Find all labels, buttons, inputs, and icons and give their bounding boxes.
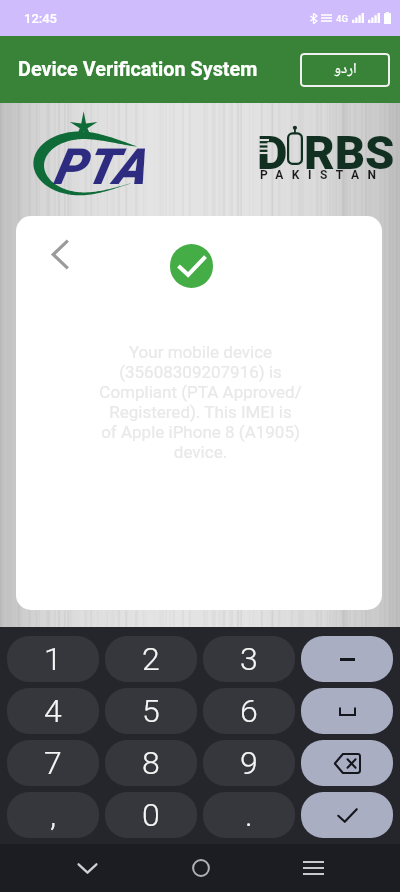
staticText: اردو bbox=[334, 57, 357, 83]
button[interactable]: Recent apps bbox=[257, 844, 370, 892]
button[interactable]: 0 bbox=[105, 792, 197, 838]
staticText: 3 bbox=[240, 640, 258, 678]
button[interactable]: 7 bbox=[7, 740, 99, 786]
button[interactable]: Home bbox=[144, 844, 257, 892]
button[interactable]: 3 bbox=[203, 636, 295, 682]
staticText: , bbox=[50, 796, 57, 834]
button[interactable]: Enter bbox=[301, 792, 393, 838]
staticText: 0 bbox=[142, 796, 160, 834]
button[interactable]: Back bbox=[37, 231, 83, 277]
button[interactable]: Backspace bbox=[301, 740, 393, 786]
staticText: 4 bbox=[44, 692, 62, 730]
button[interactable]: 8 bbox=[105, 740, 197, 786]
button[interactable]: 6 bbox=[203, 688, 295, 734]
staticText: 1 bbox=[44, 640, 62, 678]
staticText: Device Verification System bbox=[18, 58, 258, 81]
staticText: 5 bbox=[142, 692, 160, 730]
button[interactable]: Dash bbox=[301, 636, 393, 682]
staticText: 12:45 bbox=[24, 11, 58, 26]
button[interactable]: . bbox=[203, 792, 295, 838]
button[interactable]: 9 bbox=[203, 740, 295, 786]
button[interactable]: Space bbox=[301, 688, 393, 734]
staticText: . bbox=[245, 796, 253, 834]
button[interactable]: 1 bbox=[7, 636, 99, 682]
button[interactable]: 4 bbox=[7, 688, 99, 734]
button[interactable]: , bbox=[7, 792, 99, 838]
button[interactable]: 2 bbox=[105, 636, 197, 682]
staticText: 6 bbox=[240, 692, 258, 730]
button[interactable]: اردو bbox=[300, 53, 390, 87]
staticText: D bbox=[257, 125, 288, 180]
staticText: 8 bbox=[142, 744, 160, 782]
button[interactable]: Back bbox=[30, 844, 144, 892]
staticText: Your mobile device (35608309207916) is C… bbox=[66, 342, 335, 462]
staticText: 4G bbox=[336, 13, 348, 24]
staticText: PAKISTAN bbox=[260, 168, 385, 182]
staticText: 9 bbox=[240, 744, 258, 782]
staticText: PTA bbox=[53, 138, 146, 197]
staticText: 2 bbox=[142, 640, 160, 678]
staticText: 7 bbox=[44, 744, 62, 782]
button[interactable]: 5 bbox=[105, 688, 197, 734]
staticText: RBS bbox=[304, 125, 395, 180]
